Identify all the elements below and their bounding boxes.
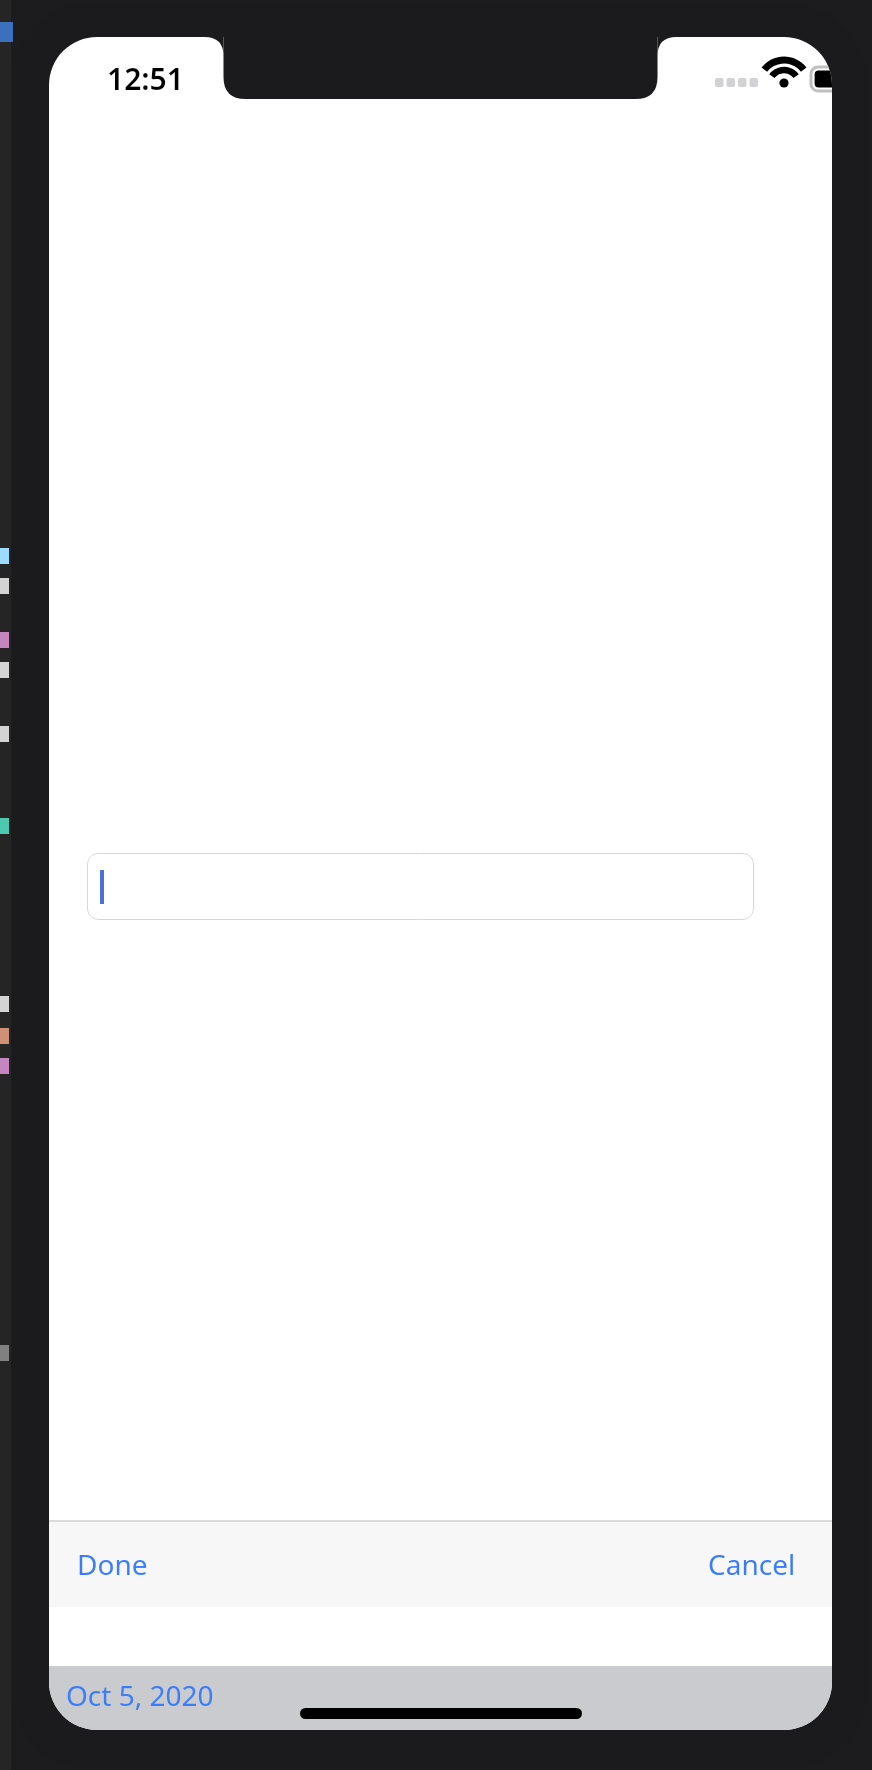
button[interactable]: Text field <box>87 853 754 920</box>
staticText: 12:51 <box>107 58 184 99</box>
staticText: Cancel <box>708 1545 796 1583</box>
button[interactable]: Cancel <box>708 1545 796 1583</box>
staticText: Done <box>77 1545 148 1583</box>
button[interactable]: Done <box>77 1545 148 1583</box>
button[interactable]: Oct 5, 2020 <box>66 1676 214 1714</box>
staticText: Oct 5, 2020 <box>66 1676 214 1714</box>
